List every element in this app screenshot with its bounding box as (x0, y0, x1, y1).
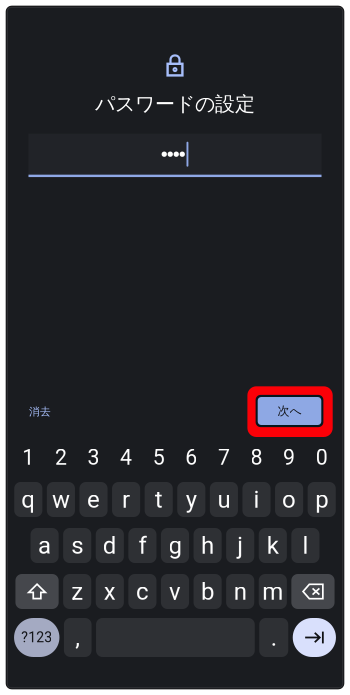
button[interactable]: u (210, 482, 238, 517)
button[interactable]: k (259, 528, 287, 563)
staticText: l (302, 531, 308, 559)
staticText: c (136, 577, 149, 605)
staticText: 4 (120, 445, 132, 470)
staticText: s (71, 531, 83, 559)
button[interactable]: Next field (293, 618, 336, 657)
staticText: x (104, 577, 116, 605)
staticText: w (52, 485, 70, 513)
staticText: 8 (250, 445, 262, 470)
button[interactable]: o (275, 482, 303, 517)
button[interactable]: 消去 (24, 399, 56, 424)
staticText: 5 (153, 445, 165, 470)
button[interactable]: , (64, 618, 92, 657)
staticText: z (71, 577, 83, 605)
button[interactable]: 2 (47, 443, 75, 477)
staticText: . (271, 623, 277, 651)
staticText: 次へ (277, 403, 301, 418)
button[interactable]: e (79, 482, 107, 517)
button[interactable]: 0 (308, 443, 336, 477)
button[interactable]: . (259, 618, 288, 657)
staticText: e (87, 485, 100, 513)
button[interactable]: p (308, 482, 336, 517)
button[interactable]: 9 (275, 443, 303, 477)
staticText: o (282, 485, 296, 513)
button[interactable]: n (226, 574, 254, 609)
staticText: i (253, 485, 259, 513)
staticText: 3 (87, 445, 99, 470)
staticText: v (169, 577, 181, 605)
button[interactable]: w (47, 482, 75, 517)
button[interactable]: c (128, 574, 156, 609)
button[interactable]: 8 (242, 443, 270, 477)
staticText: m (262, 577, 283, 605)
button[interactable]: s (63, 528, 91, 563)
button[interactable]: z (63, 574, 91, 609)
staticText: ?123 (21, 629, 52, 646)
button[interactable]: h (194, 528, 222, 563)
button[interactable]: 6 (177, 443, 205, 477)
button[interactable]: g (161, 528, 189, 563)
button[interactable]: 3 (79, 443, 107, 477)
staticText: 6 (185, 445, 197, 470)
staticText: q (21, 485, 35, 513)
button[interactable]: i (242, 482, 270, 517)
staticText: 1 (22, 445, 34, 470)
button[interactable]: y (177, 482, 205, 517)
staticText: t (155, 485, 163, 513)
button[interactable]: f (128, 528, 156, 563)
button[interactable]: l (291, 528, 319, 563)
staticText: j (237, 531, 243, 559)
staticText: 消去 (29, 405, 51, 418)
button[interactable]: b (194, 574, 222, 609)
staticText: r (122, 485, 130, 513)
staticText: a (38, 531, 51, 559)
staticText: b (201, 577, 214, 605)
staticText: 2 (55, 445, 67, 470)
staticText: パスワードの設定 (95, 91, 255, 117)
button[interactable]: t (145, 482, 173, 517)
button[interactable]: q (14, 482, 42, 517)
staticText: h (201, 531, 214, 559)
staticText: 7 (218, 445, 230, 470)
button[interactable]: 7 (210, 443, 238, 477)
staticText: n (234, 577, 247, 605)
button[interactable]: Shift (15, 574, 59, 609)
button[interactable]: Delete (291, 574, 334, 609)
button[interactable]: d (96, 528, 124, 563)
staticText: p (315, 485, 328, 513)
button[interactable]: 1 (14, 443, 42, 477)
staticText: g (168, 531, 181, 559)
button[interactable]: 4 (112, 443, 140, 477)
button[interactable]: r (112, 482, 140, 517)
staticText: , (75, 623, 80, 651)
staticText: f (138, 531, 146, 559)
staticText: y (186, 485, 197, 513)
button[interactable]: v (161, 574, 189, 609)
staticText: k (267, 531, 279, 559)
button[interactable]: 次へ (247, 386, 333, 437)
staticText: d (103, 531, 117, 559)
button[interactable]: 5 (145, 443, 173, 477)
staticText: 9 (283, 445, 295, 470)
button[interactable]: j (226, 528, 254, 563)
button[interactable]: a (31, 528, 59, 563)
button[interactable]: x (96, 574, 124, 609)
staticText: u (217, 485, 230, 513)
button[interactable]: ?123 (14, 618, 59, 657)
button[interactable]: m (259, 574, 287, 609)
staticText: 0 (316, 445, 328, 470)
